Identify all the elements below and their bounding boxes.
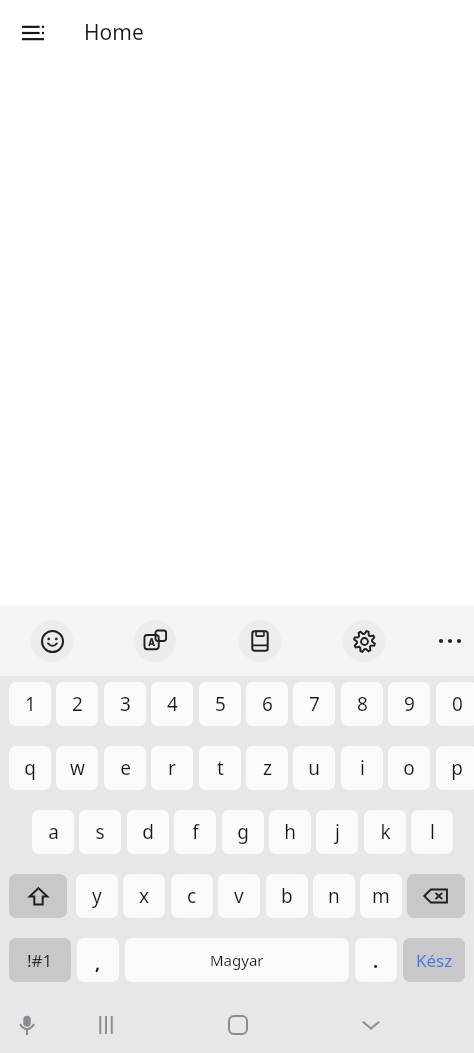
button[interactable]: a: [32, 810, 74, 854]
button[interactable]: i: [341, 746, 383, 790]
button[interactable]: m: [360, 874, 402, 918]
button[interactable]: Kész: [403, 938, 465, 982]
staticText: s: [95, 819, 105, 845]
button[interactable]: Hide keyboard: [350, 1004, 392, 1046]
staticText: z: [263, 755, 272, 781]
button[interactable]: Voice input: [6, 1004, 48, 1046]
button[interactable]: Keyboard tool: [343, 620, 385, 662]
button[interactable]: Magyar: [125, 938, 349, 982]
staticText: 4: [167, 691, 178, 717]
button[interactable]: g: [222, 810, 264, 854]
staticText: h: [284, 819, 296, 845]
staticText: r: [168, 755, 176, 781]
button[interactable]: 6: [246, 682, 288, 726]
button[interactable]: e: [104, 746, 146, 790]
staticText: x: [139, 883, 150, 909]
staticText: m: [372, 883, 390, 909]
staticText: y: [92, 883, 102, 909]
staticText: 5: [215, 691, 226, 717]
staticText: e: [120, 755, 131, 781]
staticText: q: [24, 755, 36, 781]
button[interactable]: p: [436, 746, 474, 790]
button[interactable]: More options: [429, 620, 471, 662]
staticText: i: [360, 755, 365, 781]
button[interactable]: h: [269, 810, 311, 854]
button[interactable]: q: [9, 746, 51, 790]
staticText: !#1: [27, 949, 53, 972]
button[interactable]: 0: [436, 682, 474, 726]
button[interactable]: u: [293, 746, 335, 790]
button[interactable]: Recent apps: [85, 1004, 127, 1046]
button[interactable]: 2: [56, 682, 98, 726]
staticText: v: [234, 883, 244, 909]
button[interactable]: ,: [77, 938, 119, 982]
staticText: t: [217, 755, 224, 781]
button[interactable]: v: [218, 874, 260, 918]
button[interactable]: Menu: [10, 10, 56, 56]
button[interactable]: Shift: [9, 874, 67, 918]
button[interactable]: s: [79, 810, 121, 854]
staticText: 8: [357, 691, 368, 717]
staticText: w: [70, 755, 85, 781]
staticText: Kész: [416, 949, 453, 972]
staticText: f: [192, 819, 199, 845]
button[interactable]: k: [364, 810, 406, 854]
button[interactable]: 9: [388, 682, 430, 726]
button[interactable]: o: [388, 746, 430, 790]
staticText: Magyar: [210, 950, 264, 970]
button[interactable]: n: [313, 874, 355, 918]
staticText: ,: [95, 951, 101, 976]
staticText: d: [142, 819, 154, 845]
staticText: l: [430, 819, 435, 845]
button[interactable]: Keyboard tool: [31, 620, 73, 662]
staticText: 3: [120, 691, 131, 717]
staticText: 9: [404, 691, 415, 717]
button[interactable]: d: [127, 810, 169, 854]
button[interactable]: 1: [9, 682, 51, 726]
staticText: o: [403, 755, 415, 781]
button[interactable]: 8: [341, 682, 383, 726]
button[interactable]: Keyboard tool: [239, 620, 281, 662]
button[interactable]: Backspace: [407, 874, 465, 918]
staticText: 6: [262, 691, 273, 717]
staticText: b: [281, 883, 293, 909]
button[interactable]: Keyboard tool: [134, 620, 176, 662]
staticText: p: [451, 755, 463, 781]
staticText: c: [187, 883, 197, 909]
button[interactable]: 5: [199, 682, 241, 726]
staticText: g: [237, 819, 249, 845]
button[interactable]: !#1: [9, 938, 71, 982]
staticText: n: [328, 883, 340, 909]
staticText: a: [48, 819, 59, 845]
button[interactable]: x: [123, 874, 165, 918]
button[interactable]: Home: [217, 1004, 259, 1046]
staticText: j: [335, 819, 340, 845]
staticText: 2: [72, 691, 83, 717]
staticText: Home: [84, 18, 144, 47]
staticText: 7: [309, 691, 320, 717]
button[interactable]: 4: [151, 682, 193, 726]
button[interactable]: w: [56, 746, 98, 790]
staticText: 1: [25, 691, 36, 717]
button[interactable]: l: [411, 810, 453, 854]
button[interactable]: 7: [293, 682, 335, 726]
button[interactable]: r: [151, 746, 193, 790]
button[interactable]: .: [355, 938, 397, 982]
button[interactable]: j: [316, 810, 358, 854]
button[interactable]: 3: [104, 682, 146, 726]
button[interactable]: t: [199, 746, 241, 790]
staticText: k: [380, 819, 391, 845]
button[interactable]: b: [266, 874, 308, 918]
staticText: .: [373, 949, 379, 974]
button[interactable]: c: [171, 874, 213, 918]
staticText: 0: [452, 691, 463, 717]
button[interactable]: z: [246, 746, 288, 790]
button[interactable]: f: [174, 810, 216, 854]
staticText: u: [308, 755, 320, 781]
button[interactable]: y: [76, 874, 118, 918]
